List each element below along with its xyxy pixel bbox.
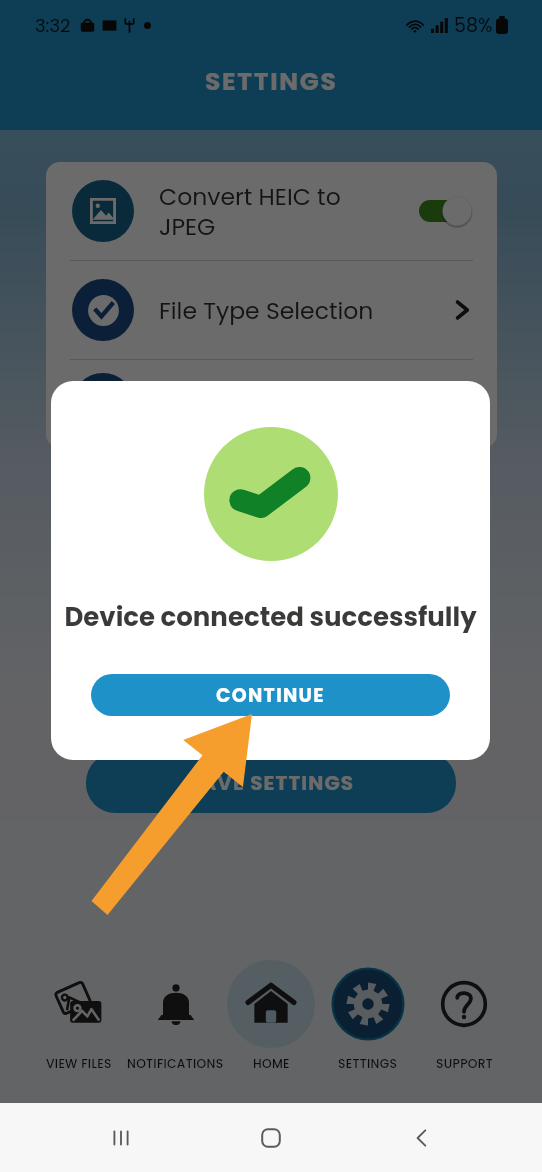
staticText: CONTINUE	[216, 682, 325, 709]
staticText: SAVE SETTINGS	[188, 769, 355, 797]
button[interactable]: Recents	[91, 1108, 151, 1168]
button[interactable]: CONTINUE	[91, 674, 450, 716]
staticText: NOTIFICATIONS	[127, 1055, 224, 1072]
staticText: SETTINGS	[205, 64, 338, 99]
staticText: SETTINGS	[338, 1055, 398, 1072]
button[interactable]: SETTINGS	[293, 960, 443, 1085]
button[interactable]: HOME	[196, 960, 346, 1085]
staticText: 3:32	[35, 13, 71, 38]
staticText: Convert HEIC to JPEG	[159, 180, 419, 243]
button[interactable]: SUPPORT	[389, 960, 539, 1085]
button[interactable]: File Type Selection	[46, 261, 497, 359]
staticText: HOME	[253, 1055, 290, 1072]
button[interactable]: SAVE SETTINGS	[86, 753, 456, 813]
button[interactable]: Back	[392, 1108, 452, 1168]
staticText: SUPPORT	[436, 1055, 493, 1072]
staticText: Device connected successfully	[64, 599, 477, 635]
staticText: VIEW FILES	[46, 1055, 112, 1072]
button[interactable]: Storage	[46, 360, 497, 448]
button[interactable]: Convert HEIC to JPEG	[46, 162, 497, 260]
button[interactable]: NOTIFICATIONS	[100, 960, 250, 1085]
button[interactable]: Convert HEIC to JPEG toggle	[419, 194, 473, 228]
button[interactable]: Home	[241, 1108, 301, 1168]
button[interactable]: VIEW FILES	[4, 960, 154, 1085]
staticText: 58%	[454, 12, 493, 39]
staticText: File Type Selection	[159, 294, 451, 327]
